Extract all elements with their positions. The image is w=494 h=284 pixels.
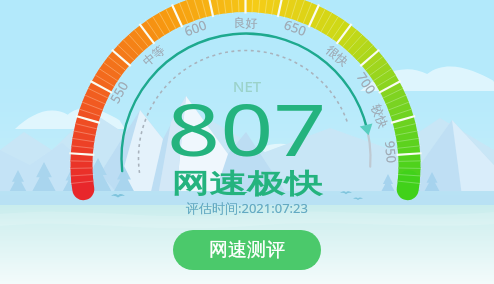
staticText: 网速测评 xyxy=(209,238,285,262)
staticText: 网速极快 xyxy=(171,167,323,201)
staticText: NET xyxy=(233,76,262,96)
staticText: 807 xyxy=(167,79,327,177)
staticText: 评估时间:2021:07:23 xyxy=(186,199,308,217)
button[interactable]: 网速测评 xyxy=(173,230,321,270)
